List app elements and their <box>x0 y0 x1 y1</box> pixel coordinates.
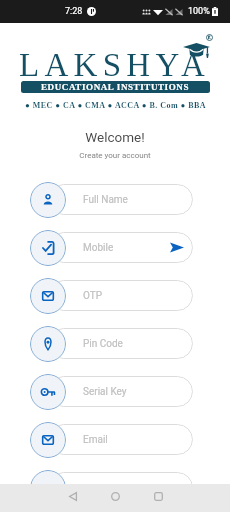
staticText: ● MEC ● CA ● CMA ● ACCA ● B. Com ● BBA <box>25 101 206 110</box>
button[interactable]: Mobile <box>48 232 193 263</box>
button[interactable]: Recents <box>137 482 180 510</box>
button[interactable]: Serial Key <box>48 376 193 407</box>
staticText: 100% <box>188 6 210 17</box>
button[interactable]: OTP <box>30 278 66 314</box>
button[interactable]: Pin Code <box>30 326 66 362</box>
staticText: 7:28 <box>65 6 83 17</box>
staticText: Full Name <box>83 194 128 206</box>
staticText: Serial Key <box>83 386 127 398</box>
staticText: Create your account <box>0 151 230 160</box>
button[interactable]: Full Name <box>30 182 66 218</box>
button[interactable]: Back <box>51 482 94 510</box>
button[interactable]: Email <box>30 422 66 458</box>
staticText: Email <box>83 434 108 446</box>
staticText: Mobile <box>83 242 114 254</box>
button[interactable]: Full Name <box>48 184 193 215</box>
staticText: LAKSHYA <box>19 47 211 84</box>
button[interactable]: Email <box>48 424 193 455</box>
button[interactable] <box>48 472 193 503</box>
button[interactable]: Home <box>94 482 137 510</box>
button[interactable]: OTP <box>48 280 193 311</box>
button[interactable]: Pin Code <box>48 328 193 359</box>
button[interactable]: Mobile <box>30 230 66 266</box>
staticText: EDUCATIONAL INSTITUTIONS <box>41 82 190 92</box>
button[interactable]: Input field <box>30 470 66 506</box>
staticText: OTP <box>83 290 103 302</box>
staticText: Pin Code <box>83 338 123 350</box>
staticText: Welcome! <box>0 129 230 145</box>
button[interactable]: Serial Key <box>30 374 66 410</box>
